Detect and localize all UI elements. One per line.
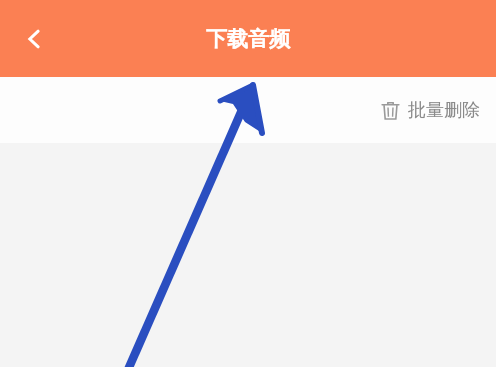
staticText: 批量删除 (408, 99, 480, 122)
button[interactable]: Delete (373, 91, 488, 130)
other: Delete (381, 101, 400, 120)
button[interactable]: Back (6, 11, 62, 67)
staticText: 下载音频 (206, 26, 290, 52)
